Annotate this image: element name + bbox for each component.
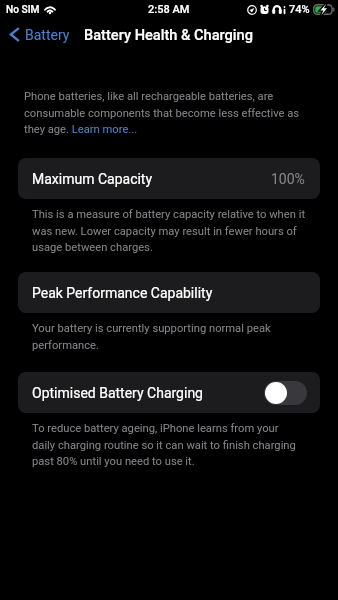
staticText: To reduce battery ageing, iPhone learns … — [32, 422, 296, 467]
button[interactable]: Optimised Battery Charging toggle — [264, 381, 307, 405]
staticText: Maximum Capacity — [32, 171, 153, 187]
staticText: Phone batteries, like all rechargeable b… — [24, 90, 300, 135]
staticText: Battery — [25, 27, 70, 43]
button[interactable]: Optimised Battery Charging — [18, 372, 320, 413]
staticText: Peak Performance Capability — [32, 285, 213, 301]
staticText: This is a measure of battery capacity re… — [32, 208, 306, 253]
staticText: Optimised Battery Charging — [32, 385, 203, 401]
staticText: Your battery is currently supporting nor… — [32, 322, 271, 351]
button[interactable]: Peak Performance Capability — [18, 272, 320, 313]
staticText: 100% — [271, 171, 305, 187]
staticText: Battery Health & Charging — [84, 26, 253, 43]
button[interactable]: Maximum Capacity — [18, 158, 320, 199]
staticText: 2:58 AM — [148, 3, 190, 16]
staticText: No SIM — [6, 4, 40, 16]
button[interactable]: Battery — [6, 26, 72, 43]
staticText: 74% — [289, 3, 310, 16]
